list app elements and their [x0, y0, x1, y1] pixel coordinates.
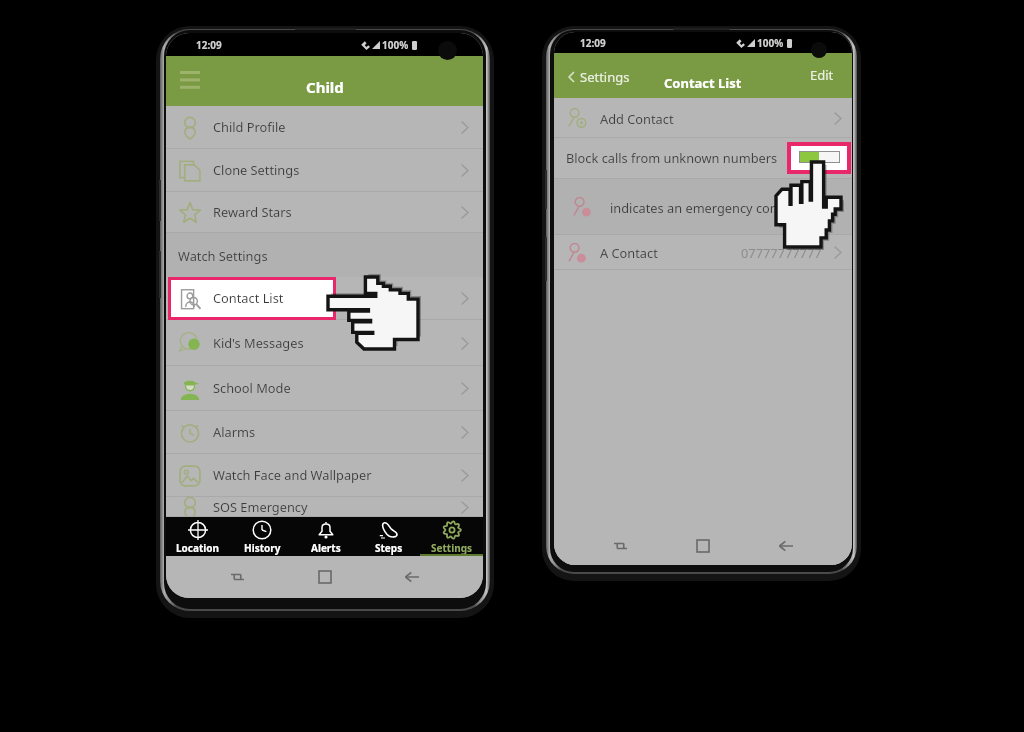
button[interactable]: Settings — [568, 68, 630, 86]
staticText: School Mode — [213, 379, 291, 396]
button[interactable]: Steps — [357, 517, 420, 556]
button[interactable]: Location — [166, 517, 230, 556]
button[interactable]: A Contact — [554, 235, 852, 270]
button[interactable]: Alarms — [166, 411, 483, 454]
button[interactable]: School Mode — [166, 366, 483, 411]
button[interactable]: Edit — [810, 66, 834, 84]
staticText: Block calls from unknown numbers — [566, 149, 778, 166]
staticText: A Contact — [600, 244, 658, 261]
staticText: Alarms — [213, 423, 256, 440]
button[interactable]: Recents — [603, 529, 637, 563]
button[interactable]: Child Profile — [166, 106, 483, 149]
staticText: Contact List — [664, 74, 742, 92]
staticText: indicates an emergency contact — [610, 199, 801, 216]
staticText: 100% — [757, 36, 784, 50]
staticText: SOS Emergency — [213, 498, 308, 515]
button[interactable]: History — [230, 517, 294, 556]
button[interactable]: Recents — [220, 560, 254, 594]
button[interactable]: Home — [308, 560, 342, 594]
staticText: 12:09 — [196, 38, 222, 52]
staticText: Child — [306, 77, 344, 97]
staticText: Watch Settings — [178, 247, 268, 264]
staticText: 100% — [382, 38, 409, 52]
staticText: Clone Settings — [213, 161, 300, 178]
button[interactable]: Home — [686, 529, 720, 563]
button[interactable]: Block calls from unknown numbers — [554, 138, 852, 179]
button[interactable]: Reward Stars — [166, 192, 483, 233]
staticText: Contact List — [213, 289, 284, 306]
staticText: Contact List — [213, 289, 284, 306]
staticText: Child Profile — [213, 118, 286, 135]
staticText: Settings — [580, 68, 630, 86]
button[interactable]: Alerts — [294, 517, 357, 556]
staticText: 12:09 — [580, 36, 606, 50]
button[interactable]: Open navigation menu — [172, 64, 208, 94]
staticText: Settings — [431, 541, 472, 555]
button[interactable]: Clone Settings — [166, 149, 483, 192]
staticText: History — [244, 541, 281, 555]
button[interactable]: Back — [395, 560, 429, 594]
button[interactable]: SOS Emergency — [166, 497, 483, 517]
button[interactable]: Contact List — [166, 277, 483, 320]
button[interactable]: Contact List — [168, 277, 336, 320]
staticText: 07777777777 — [741, 244, 822, 261]
button[interactable]: Block calls from unknown numbers toggle — [787, 142, 851, 174]
button[interactable]: Add Contact — [554, 98, 852, 138]
staticText: Add Contact — [600, 110, 674, 127]
staticText: Watch Face and Wallpaper — [213, 466, 372, 483]
button[interactable]: Settings — [420, 517, 483, 556]
staticText: Alerts — [311, 541, 341, 555]
staticText: Steps — [375, 541, 403, 555]
staticText: Reward Stars — [213, 203, 292, 220]
button[interactable]: Watch Face and Wallpaper — [166, 454, 483, 497]
staticText: Kid's Messages — [213, 334, 304, 351]
button[interactable]: indicates an emergency contact — [554, 179, 852, 235]
button[interactable]: Back — [769, 529, 803, 563]
staticText: Location — [176, 541, 220, 555]
button[interactable]: Kid's Messages — [166, 320, 483, 366]
